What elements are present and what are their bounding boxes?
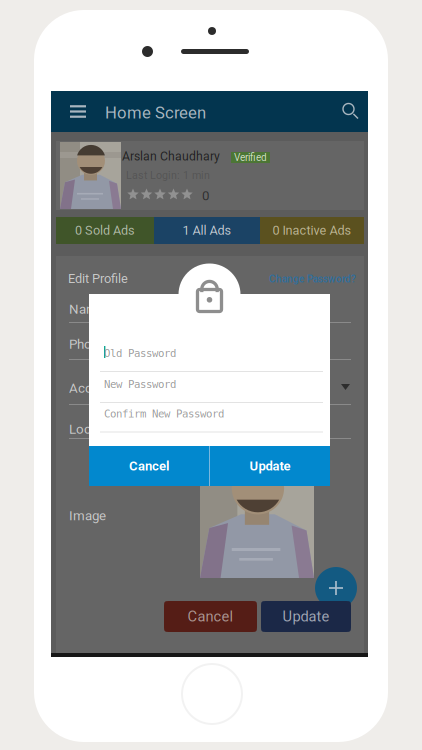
button[interactable]: Search (334, 91, 368, 132)
staticText: Change Password? (269, 273, 356, 285)
staticText: New Password (104, 378, 176, 390)
button[interactable]: 0 Sold Ads (56, 217, 154, 244)
button[interactable]: Update (210, 446, 330, 486)
button[interactable]: Change Password? (269, 273, 356, 285)
button[interactable]: 1 All Ads (154, 217, 260, 244)
staticText: Edit Profile (68, 271, 128, 286)
staticText: Verified (234, 152, 267, 163)
staticText: Update (249, 458, 290, 474)
staticText: Account Type (69, 380, 148, 396)
button[interactable]: Menu (59, 91, 97, 132)
staticText: Image (69, 508, 106, 524)
staticText: 1 All Ads (182, 223, 231, 238)
staticText: Location (69, 421, 120, 437)
button[interactable]: Update (261, 601, 351, 632)
staticText: Home Screen (105, 103, 206, 122)
staticText: 0 (202, 188, 209, 204)
button[interactable]: Cancel (164, 601, 257, 632)
staticText: Old Password (104, 347, 176, 359)
staticText: Arslan Chaudhary (122, 149, 220, 163)
staticText: Cancel (187, 608, 233, 625)
button[interactable]: Cancel (89, 446, 209, 486)
staticText: Confirm New Password (104, 407, 224, 420)
staticText: Cancel (129, 458, 169, 474)
staticText: 0 Sold Ads (75, 223, 135, 238)
staticText: Phone (69, 336, 106, 352)
staticText: Last Login: 1 min (126, 169, 210, 181)
button[interactable]: 0 Inactive Ads (260, 217, 364, 244)
staticText: 0 Inactive Ads (272, 223, 351, 238)
button[interactable]: Add (315, 567, 357, 609)
staticText: Update (282, 608, 329, 625)
staticText: Name (69, 301, 105, 317)
